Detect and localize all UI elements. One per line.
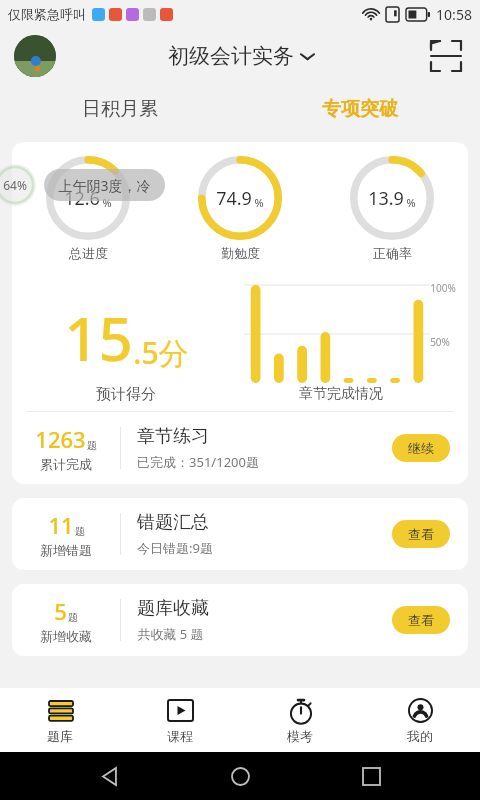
staticText: 题库 [47,728,73,744]
staticText: 查看 [408,526,434,542]
button[interactable]: Back [87,754,131,798]
staticText: 继续 [408,440,434,456]
button[interactable]: 我的 [360,688,480,752]
staticText: 共收藏 5 题 [137,625,204,643]
staticText: 50% [430,335,450,349]
button[interactable]: 5 [12,584,468,656]
button[interactable]: Home [218,754,262,798]
staticText: 勤勉度 [221,245,260,261]
button[interactable]: 上午阴3度，冷 [58,169,151,201]
staticText: 新增收藏 [40,628,92,644]
button[interactable]: Battery 64 percent [0,164,36,206]
button[interactable]: 题库 [0,688,120,752]
staticText: 今日错题:9题 [137,539,213,557]
staticText: 课程 [167,728,193,744]
staticText: 题库收藏 [137,597,209,620]
staticText: 章节完成情况 [299,385,383,403]
staticText: % [254,195,264,210]
button[interactable]: 模考 [240,688,360,752]
staticText: 仅限紧急呼叫 [8,6,86,22]
staticText: 总进度 [69,245,108,261]
staticText: 上午阴3度，冷 [58,176,151,195]
staticText: 模考 [287,728,313,744]
button[interactable]: 课程 [120,688,240,752]
staticText: 查看 [408,612,434,628]
button[interactable]: 11 [12,498,468,570]
staticText: % [406,195,416,210]
staticText: 正确率 [373,245,412,261]
staticText: 我的 [407,728,433,744]
staticText: 日积月累 [82,97,158,121]
staticText: 5 [54,596,67,626]
staticText: 11 [48,510,74,540]
button[interactable]: 初级会计实务 [168,43,314,69]
button[interactable]: 1263 [12,412,468,484]
button[interactable]: Recent apps [349,754,393,798]
staticText: 错题汇总 [137,511,209,534]
staticText: 新增错题 [40,542,92,558]
button[interactable]: 12.6 [12,142,468,484]
staticText: 预计得分 [96,385,156,403]
button[interactable]: Scan [426,36,466,76]
button[interactable]: 继续 [392,434,450,462]
button[interactable]: Profile avatar [14,35,56,77]
button[interactable]: 11 [12,498,468,570]
staticText: 题 [75,525,85,538]
staticText: .5分 [133,332,189,373]
button[interactable]: 查看 [392,606,450,634]
staticText: 章节练习 [137,425,209,448]
button[interactable]: 5 [12,584,468,656]
button[interactable]: 专项突破 [240,84,480,134]
staticText: 初级会计实务 [168,43,294,69]
staticText: 已完成：351/1200题 [137,453,259,471]
staticText: 13.9 [368,186,404,211]
staticText: 累计完成 [40,456,92,472]
staticText: 15 [64,297,133,379]
staticText: 1263 [35,424,86,454]
staticText: 100% [430,281,456,295]
staticText: 64% [3,177,27,193]
staticText: 题 [87,439,97,452]
button[interactable]: 查看 [392,520,450,548]
staticText: 题 [68,611,78,624]
staticText: 10:58 [436,5,472,24]
staticText: 12.6 [64,186,100,211]
staticText: 专项突破 [322,97,398,121]
button[interactable]: 日积月累 [0,84,240,134]
staticText: % [102,195,112,210]
staticText: 74.9 [216,186,252,211]
